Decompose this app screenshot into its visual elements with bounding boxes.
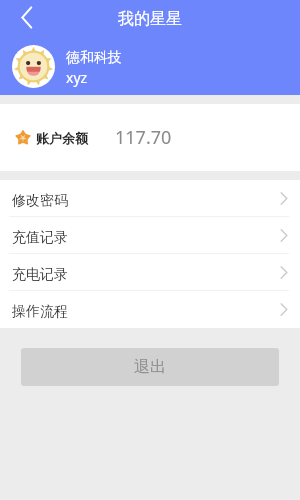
- button[interactable]: 退出: [21, 348, 279, 386]
- staticText: xyz: [66, 68, 88, 87]
- staticText: 操作流程: [12, 303, 68, 321]
- staticText: 充值记录: [12, 229, 68, 247]
- button[interactable]: 操作流程: [0, 291, 300, 328]
- staticText: 账户余额: [36, 130, 88, 146]
- button[interactable]: 充电记录: [0, 254, 300, 291]
- staticText: 德和科技: [66, 49, 122, 67]
- staticText: 修改密码: [12, 192, 68, 210]
- button[interactable]: 修改密码: [0, 180, 300, 217]
- staticText: 退出: [134, 357, 166, 377]
- button[interactable]: Back: [0, 0, 38, 38]
- staticText: 117.70: [115, 125, 172, 150]
- staticText: 我的星星: [0, 9, 300, 29]
- button[interactable]: 充值记录: [0, 217, 300, 254]
- staticText: 充电记录: [12, 266, 68, 284]
